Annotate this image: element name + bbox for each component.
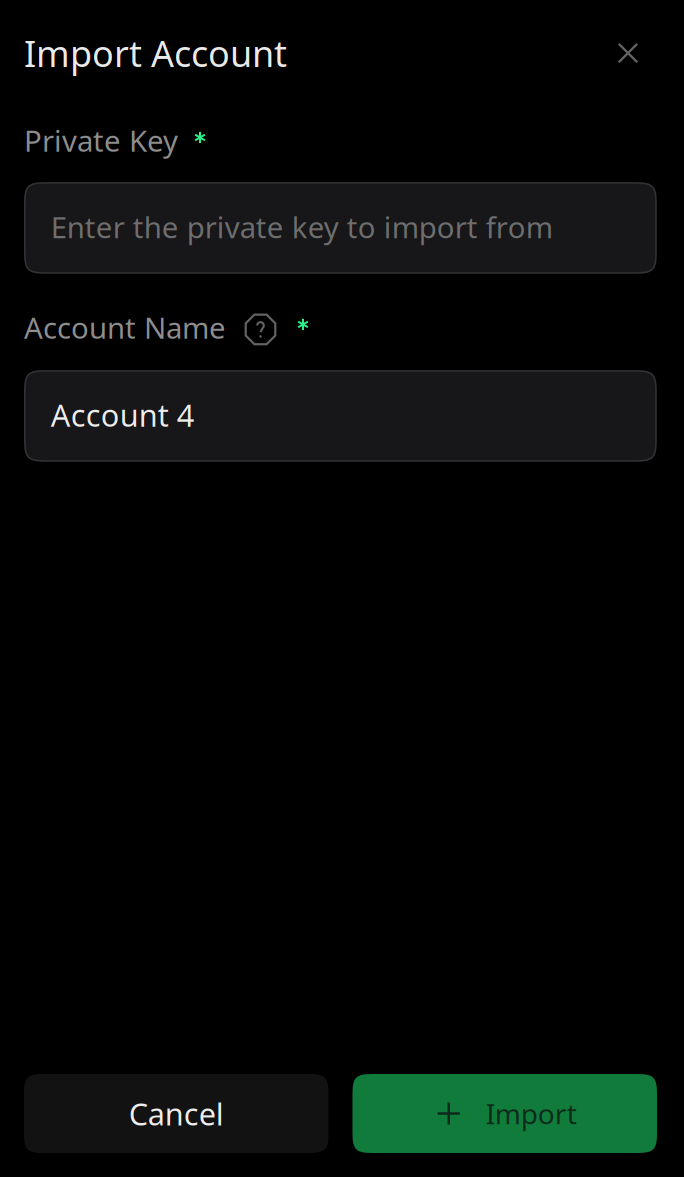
- button[interactable]: Enter the private key to import from: [25, 183, 656, 273]
- button[interactable]: Account name help: [226, 311, 286, 344]
- staticText: Import: [486, 1095, 577, 1132]
- button[interactable]: Account 4: [25, 371, 656, 461]
- staticText: Account 4: [51, 394, 195, 435]
- staticText: Private Key: [24, 121, 178, 160]
- button[interactable]: Close: [602, 27, 654, 79]
- button[interactable]: Import: [352, 1074, 657, 1153]
- staticText: Account Name: [24, 308, 226, 347]
- staticText: Import Account: [24, 29, 287, 77]
- button[interactable]: Cancel: [24, 1074, 328, 1153]
- staticText: Enter the private key to import from: [51, 207, 553, 246]
- staticText: Cancel: [129, 1093, 224, 1134]
